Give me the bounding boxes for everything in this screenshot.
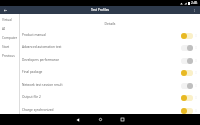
button[interactable]: Start — [0, 42, 19, 51]
button[interactable]: Enabled — [181, 107, 193, 114]
button[interactable]: AI — [0, 24, 19, 33]
button[interactable]: Advanced automation test — [20, 42, 200, 52]
staticText: 2:45 — [191, 1, 198, 5]
button[interactable]: Back — [67, 114, 89, 125]
button[interactable]: Home — [89, 114, 111, 125]
button[interactable]: Final package — [20, 67, 200, 77]
button[interactable]: Enabled — [181, 94, 193, 101]
staticText: Computer — [2, 36, 18, 40]
button[interactable]: Network test session result — [20, 80, 200, 90]
button[interactable]: Product manual — [20, 30, 200, 40]
button[interactable]: Navigate up — [2, 7, 9, 14]
button[interactable]: Recents — [111, 114, 133, 125]
button[interactable]: Charge synchronized — [20, 105, 200, 115]
staticText: Advanced automation test — [22, 45, 181, 49]
button[interactable]: Enabled — [181, 69, 193, 76]
button[interactable]: Disabled — [181, 44, 193, 51]
button[interactable]: Enabled — [181, 32, 193, 39]
staticText: Output file 2 — [22, 95, 181, 99]
staticText: Previous — [2, 54, 15, 58]
button[interactable]: Output file 2 — [20, 92, 200, 102]
staticText: Virtual — [2, 18, 12, 22]
staticText: AI — [2, 27, 6, 31]
button[interactable]: Computer — [0, 33, 19, 42]
button[interactable]: Disabled — [181, 57, 193, 64]
button[interactable]: Previous — [0, 51, 19, 60]
staticText: Charge synchronized — [22, 108, 181, 112]
button[interactable]: More options — [191, 7, 198, 14]
staticText: Test Profiles — [91, 8, 110, 12]
staticText: Product manual — [22, 33, 181, 37]
staticText: Start — [2, 45, 10, 49]
staticText: Final package — [22, 70, 181, 74]
button[interactable]: Disabled — [181, 82, 193, 89]
staticText: Network test session result — [22, 83, 181, 87]
staticText: Details — [20, 21, 200, 26]
button[interactable]: Virtual — [0, 15, 19, 24]
button[interactable]: Developers performance — [20, 55, 200, 65]
staticText: Developers performance — [22, 58, 181, 62]
